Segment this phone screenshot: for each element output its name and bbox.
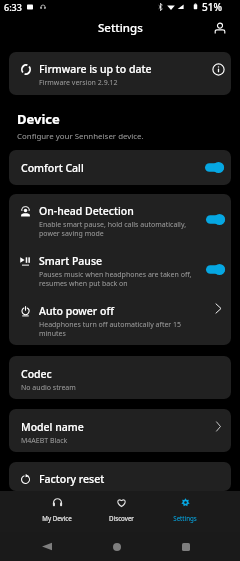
button[interactable]: Open [215,421,222,432]
staticText: Settings [98,20,143,36]
staticText: Enable smart pause, hold calls automatic… [39,220,187,238]
button[interactable]: Smart Pause [9,244,231,294]
staticText: My Device [42,514,72,522]
button[interactable]: My Device [25,491,89,527]
button[interactable]: Account [210,18,230,38]
button[interactable]: Back [12,532,82,561]
button[interactable]: Comfort Call [9,150,231,185]
button[interactable]: Settings [153,491,217,527]
staticText: Comfort Call [21,161,205,175]
staticText: No audio stream [21,383,76,393]
button[interactable]: Factory reset [9,462,231,491]
staticText: Discover [109,514,134,522]
button[interactable]: On-head Detection [9,194,231,244]
button[interactable]: Toggle [206,214,225,225]
button[interactable]: Auto power off [9,294,231,344]
button[interactable]: Model name [9,409,231,452]
button[interactable]: Toggle [205,162,224,173]
staticText: Model name [21,420,84,434]
button[interactable]: Open [214,303,223,314]
staticText: 6:33 [4,1,22,13]
staticText: Codec [21,367,52,381]
staticText: Settings [173,514,197,522]
staticText: M4AEBT Black [21,436,68,446]
button[interactable]: Home [82,532,151,561]
staticText: Device [17,110,60,128]
button[interactable]: Info [212,63,225,76]
staticText: Firmware is up to date [39,62,152,76]
button[interactable]: Firmware is up to date [9,52,231,95]
staticText: 51% [202,0,222,13]
staticText: Configure your Sennheiser device. [17,131,144,142]
button[interactable]: Codec [9,356,231,399]
staticText: Factory reset [39,472,105,486]
button[interactable]: Toggle [206,264,225,275]
staticText: Smart Pause [39,254,103,268]
staticText: Auto power off [39,304,114,318]
staticText: Firmware version 2.9.12 [39,78,118,88]
staticText: Headphones turn off automatically after … [39,320,182,338]
button[interactable]: Discover [89,491,153,527]
staticText: On-head Detection [39,204,134,218]
staticText: Pauses music when headphones are taken o… [39,270,192,288]
button[interactable]: Recents [151,532,220,561]
